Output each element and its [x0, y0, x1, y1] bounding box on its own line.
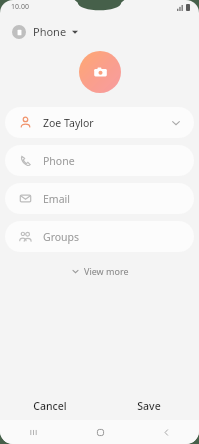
- staticText: Save: [137, 399, 161, 413]
- staticText: Groups: [43, 230, 80, 244]
- button[interactable]: View more: [64, 261, 136, 281]
- button[interactable]: Home: [67, 420, 133, 444]
- staticText: Phone: [33, 24, 67, 39]
- button[interactable]: Groups: [5, 221, 194, 252]
- staticText: Cancel: [33, 399, 67, 413]
- staticText: Zoe Taylor: [43, 116, 94, 130]
- button[interactable]: Phone: [9, 21, 81, 42]
- staticText: View more: [84, 265, 129, 277]
- staticText: 10.00: [11, 2, 29, 12]
- staticText: Phone: [43, 154, 75, 168]
- button[interactable]: Email: [5, 183, 194, 214]
- button[interactable]: Add photo: [79, 51, 121, 93]
- button[interactable]: Cancel: [0, 392, 99, 420]
- button[interactable]: Save: [99, 392, 199, 420]
- button[interactable]: Recents: [0, 420, 67, 444]
- button[interactable]: Phone: [5, 145, 194, 176]
- button[interactable]: Back: [133, 420, 199, 444]
- button[interactable]: Zoe Taylor: [5, 107, 194, 138]
- staticText: Email: [43, 192, 70, 206]
